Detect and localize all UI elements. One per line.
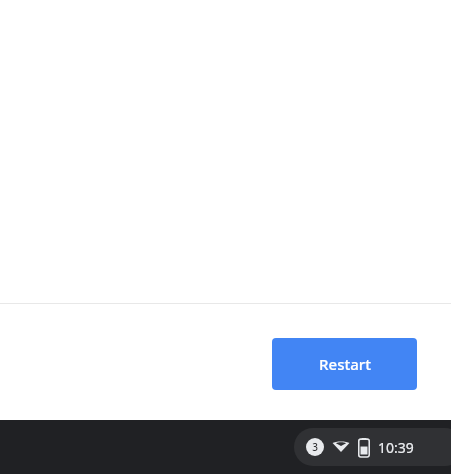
button[interactable]: System status: notifications, network, b…	[294, 428, 451, 466]
button[interactable]: Restart	[272, 338, 417, 390]
staticText: 10:39	[378, 438, 414, 457]
staticText: 3	[312, 440, 318, 454]
other: Battery	[358, 438, 370, 457]
staticText: Restart	[319, 354, 371, 374]
other: Wi-Fi	[332, 438, 350, 456]
